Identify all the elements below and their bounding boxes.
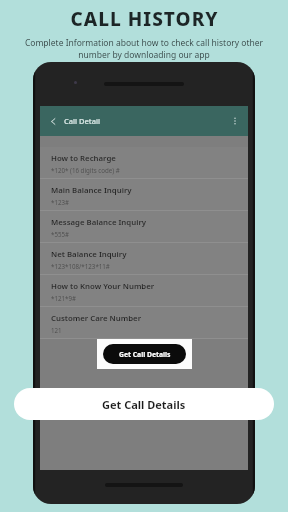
- staticText: Complete Information about how to check …: [14, 37, 274, 61]
- staticText: How to Know Your Number: [51, 281, 155, 292]
- staticText: Get Call Details: [119, 350, 171, 359]
- staticText: Message Balance Inquiry: [51, 217, 147, 228]
- staticText: Net Balance Inquiry: [51, 249, 127, 260]
- staticText: *120* (16 digits code) #: [51, 166, 120, 174]
- button[interactable]: Main Balance Inquiry: [40, 179, 248, 210]
- staticText: Customer Care Number: [51, 313, 142, 324]
- staticText: *121*9#: [51, 294, 76, 302]
- button[interactable]: Message Balance Inquiry: [40, 211, 248, 242]
- button[interactable]: Back: [40, 106, 248, 136]
- staticText: Call Detail: [64, 116, 101, 126]
- button[interactable]: Net Balance Inquiry: [40, 243, 248, 274]
- staticText: *555#: [51, 230, 70, 238]
- staticText: Main Balance Inquiry: [51, 185, 132, 196]
- button[interactable]: Get Call Details: [14, 388, 274, 420]
- button[interactable]: How to Recharge: [40, 147, 248, 178]
- staticText: How to Recharge: [51, 153, 116, 164]
- staticText: CALL HISTORY: [70, 6, 219, 32]
- button[interactable]: How to Know Your Number: [40, 275, 248, 306]
- button[interactable]: Customer Care Number: [40, 307, 248, 338]
- button[interactable]: More options: [228, 114, 242, 128]
- staticText: *123*108/*123*11#: [51, 262, 110, 270]
- button[interactable]: Back: [46, 114, 60, 128]
- button[interactable]: Get Call Details: [103, 344, 186, 364]
- staticText: Get Call Details: [102, 397, 186, 412]
- staticText: 121: [51, 326, 62, 334]
- staticText: *123#: [51, 198, 70, 206]
